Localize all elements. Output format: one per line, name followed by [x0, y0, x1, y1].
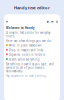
staticText: A simple, fast editor for everyday notes…	[6, 31, 50, 38]
staticText: Tap anywhere to start editing.	[6, 74, 47, 78]
button[interactable]: Undo	[5, 20, 8, 23]
staticText: Search across everything	[9, 58, 40, 61]
button[interactable]: More	[55, 20, 58, 23]
button[interactable]: Highlight	[51, 20, 54, 23]
staticText: Write in plain markdown	[9, 44, 42, 47]
staticText: Drop in images and links	[9, 48, 43, 52]
staticText: Everything is saved as you type, and syn…	[6, 62, 54, 73]
staticText: Handy text editor	[14, 5, 50, 10]
button[interactable]: Text colour	[46, 20, 49, 23]
staticText: Here are a few things you can do:	[6, 39, 52, 43]
staticText: Welcome to Handy	[6, 26, 35, 30]
staticText: Organise notes in folders	[9, 53, 45, 57]
